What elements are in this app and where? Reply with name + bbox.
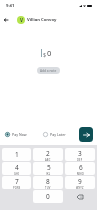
staticText: 5 [47,163,51,172]
staticText: 0 [46,192,50,201]
button[interactable]: Back [0,14,11,25]
staticText: JKL [46,172,51,175]
staticText: 8 [46,177,50,186]
button[interactable]: Pay Now [5,132,27,137]
staticText: Pay Later [50,132,66,137]
staticText: V [20,17,23,23]
button[interactable]: 6 [65,162,95,175]
button[interactable]: 5 [33,162,63,175]
button[interactable]: Pay Later [43,132,66,137]
button[interactable]: 9 [65,176,95,189]
button[interactable]: Send [79,127,93,142]
button[interactable]: 8 [33,176,63,189]
button[interactable]: 0 [33,190,63,203]
staticText: GHI [14,172,20,175]
button[interactable]: Backspace [65,190,95,203]
staticText: MNO [77,172,84,175]
button[interactable]: 2 [33,148,63,161]
staticText: DEF [77,158,83,161]
staticText: 2 [46,149,50,158]
staticText: WXYZ [76,186,84,189]
staticText: PQRS [13,186,21,189]
staticText: 3 [78,149,82,158]
staticText: Pay Now [12,132,27,137]
staticText: 0 [47,48,52,58]
staticText: Villian Convoy [27,17,57,23]
button[interactable]: 7 [2,176,31,189]
staticText: ABC [45,158,51,161]
button[interactable]: Add a note [37,67,60,74]
staticText: 6 [79,163,83,172]
staticText: TUV [45,186,51,189]
button[interactable]: 4 [2,162,31,175]
staticText: 9 [78,177,82,186]
staticText: $ [43,51,47,58]
staticText: 9:41 [6,3,15,9]
staticText: 7 [15,177,19,186]
button[interactable]: 3 [65,148,95,161]
staticText: 4 [15,163,19,172]
staticText: 1 [15,150,19,159]
staticText: Add a note [40,69,57,73]
button[interactable]: 1 [2,148,31,161]
